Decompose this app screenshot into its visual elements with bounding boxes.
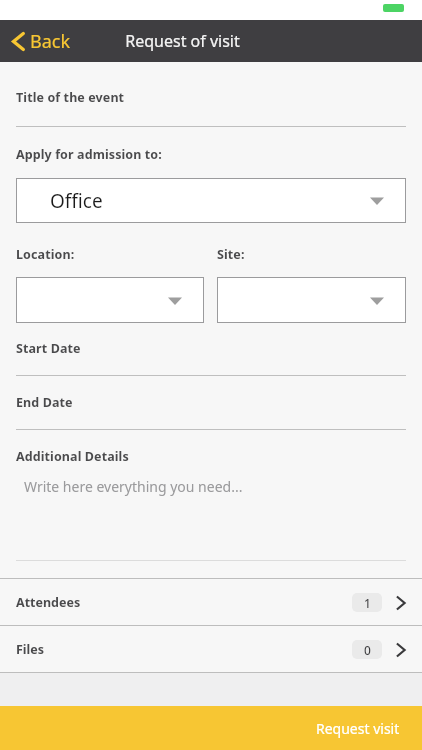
staticText: Office (50, 188, 103, 214)
staticText: Title of the event (16, 89, 125, 106)
staticText: Write here everything you need... (24, 477, 243, 496)
staticText: Start Date (16, 340, 81, 357)
staticText: Request visit (316, 719, 400, 738)
staticText: Back (30, 29, 71, 54)
staticText: 0 (364, 642, 371, 658)
staticText: Apply for admission to: (16, 146, 162, 163)
button[interactable]: Office (16, 178, 406, 223)
staticText: End Date (16, 394, 73, 411)
staticText: Request of visit (125, 30, 240, 52)
button[interactable]: Files (0, 626, 422, 672)
staticText: Location: (16, 246, 75, 263)
button[interactable]: Write here everything you need... (0, 477, 422, 561)
button[interactable]: Back (11, 20, 71, 62)
button[interactable] (217, 277, 406, 323)
button[interactable]: Request visit (0, 706, 422, 750)
button[interactable] (16, 277, 204, 323)
button[interactable]: Attendees (0, 579, 422, 625)
staticText: Files (16, 641, 45, 658)
staticText: Additional Details (16, 448, 129, 465)
staticText: Site: (217, 246, 245, 263)
staticText: 1 (364, 595, 371, 611)
staticText: Attendees (16, 594, 81, 611)
